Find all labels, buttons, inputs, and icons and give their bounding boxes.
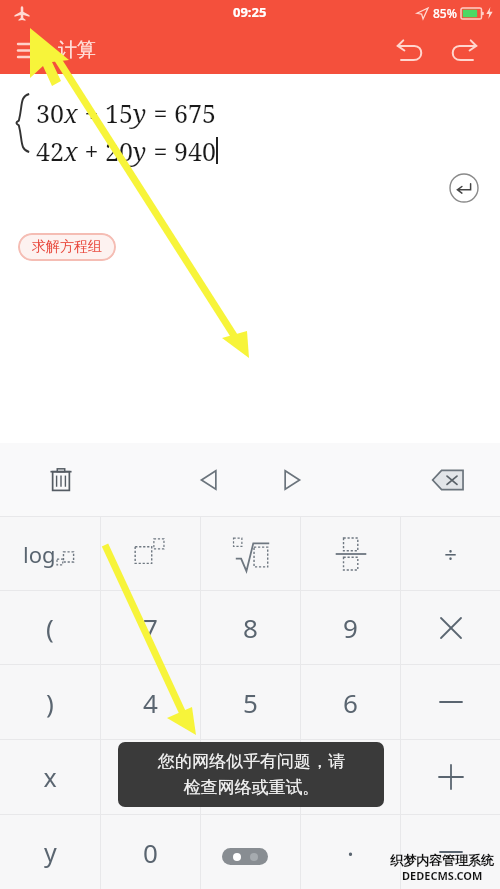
staticText: 940 xyxy=(174,134,216,168)
staticText: ( xyxy=(46,610,54,645)
staticText: = xyxy=(147,96,174,130)
button[interactable]: ) xyxy=(0,665,100,739)
staticText: x xyxy=(64,96,78,130)
button[interactable]: 7 xyxy=(101,591,200,664)
staticText: 织梦内容管理系统 xyxy=(390,852,494,868)
button[interactable]: 5 xyxy=(201,665,300,739)
button[interactable] xyxy=(401,740,500,814)
staticText: 675 xyxy=(174,96,216,130)
button[interactable]: x xyxy=(0,740,100,814)
button[interactable]: 4 xyxy=(101,665,200,739)
staticText: 求解方程组 xyxy=(32,238,102,256)
button[interactable]: Menu xyxy=(12,36,46,65)
staticText: y xyxy=(133,134,147,168)
staticText: 2 xyxy=(243,760,258,795)
staticText: 8 xyxy=(243,610,258,645)
staticText: x xyxy=(64,134,78,168)
button[interactable]: 8 xyxy=(201,591,300,664)
staticText: log xyxy=(23,539,56,569)
button[interactable]: Redo xyxy=(442,28,486,72)
button[interactable]: 6 xyxy=(301,665,400,739)
button[interactable]: 2 xyxy=(201,740,300,814)
button[interactable]: Enter xyxy=(446,170,482,206)
staticText: 20 xyxy=(105,134,133,168)
staticText: 09:25 xyxy=(233,3,267,21)
button[interactable] xyxy=(401,815,500,889)
staticText: 30 xyxy=(36,96,64,130)
button[interactable] xyxy=(301,517,400,590)
staticText: ) xyxy=(46,685,54,720)
button[interactable]: · xyxy=(301,815,400,889)
staticText: 42 xyxy=(36,134,64,168)
button[interactable]: Move right xyxy=(268,456,316,504)
staticText: x xyxy=(43,760,57,794)
staticText: + xyxy=(78,96,105,130)
staticText: 5 xyxy=(243,685,258,720)
button[interactable]: log xyxy=(0,517,100,590)
button[interactable]: 0 xyxy=(101,815,200,889)
button[interactable]: Backspace xyxy=(423,455,473,505)
staticText: 15 xyxy=(105,96,133,130)
button[interactable]: ( xyxy=(0,591,100,664)
button[interactable]: 9 xyxy=(301,591,400,664)
button[interactable]: ÷ xyxy=(401,517,500,590)
button[interactable] xyxy=(401,665,500,739)
staticText: + xyxy=(78,134,105,168)
staticText: 6 xyxy=(343,685,358,720)
button[interactable]: 求解方程组 xyxy=(18,233,116,261)
staticText: 0 xyxy=(143,835,158,870)
staticText: 您的网络似乎有问题，请 检查网络或重试。 xyxy=(158,751,345,798)
staticText: y xyxy=(44,835,57,869)
button[interactable]: Clear all xyxy=(37,456,85,504)
staticText: · xyxy=(347,835,354,870)
button[interactable]: 1 xyxy=(101,740,200,814)
staticText: 4 xyxy=(143,685,158,720)
button[interactable] xyxy=(101,517,200,590)
staticText: 85% xyxy=(433,5,457,21)
staticText: = xyxy=(147,134,174,168)
staticText: ÷ xyxy=(444,539,457,569)
button[interactable] xyxy=(201,517,300,590)
staticText: 计算 xyxy=(58,38,96,62)
button[interactable]: Move left xyxy=(185,456,233,504)
button[interactable]: 3 xyxy=(301,740,400,814)
staticText: y xyxy=(133,96,147,130)
button[interactable] xyxy=(201,815,300,889)
button[interactable] xyxy=(401,591,500,664)
button[interactable]: y xyxy=(0,815,100,889)
staticText: DEDECMS.COM xyxy=(402,868,483,883)
button[interactable]: Undo xyxy=(388,28,432,72)
staticText: 9 xyxy=(343,610,358,645)
staticText: 7 xyxy=(143,610,158,645)
